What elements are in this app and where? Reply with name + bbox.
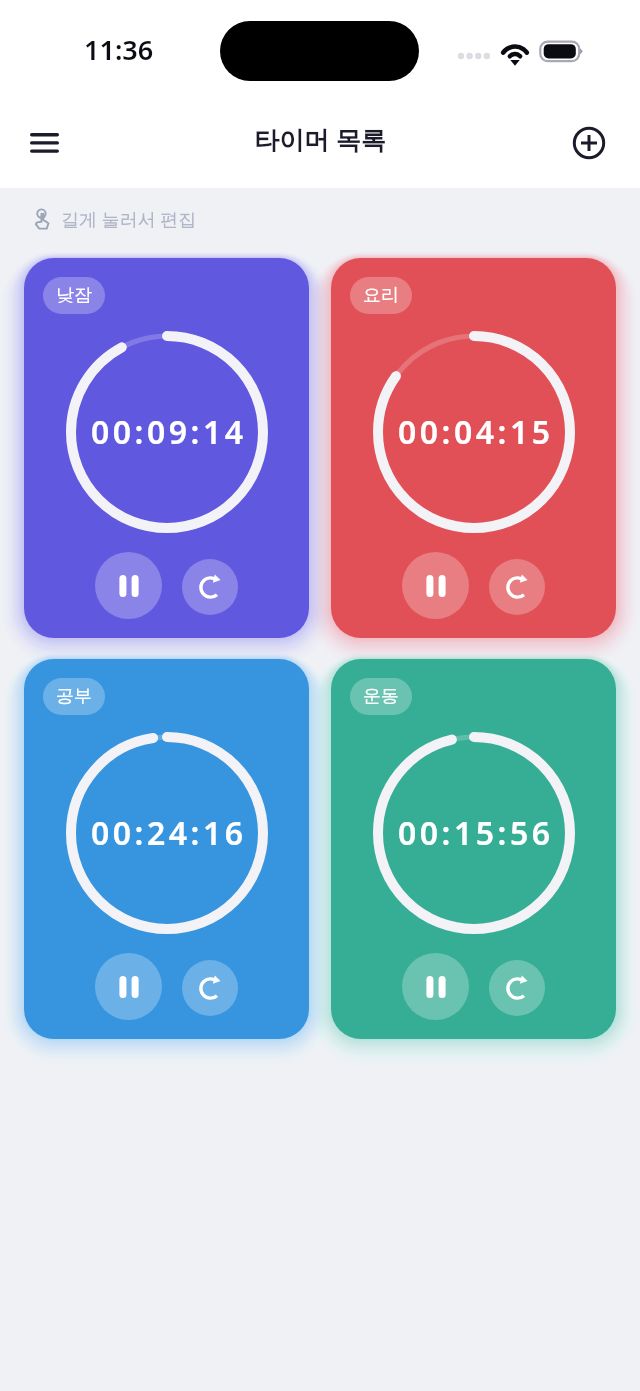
staticText: 운동 [363,685,399,708]
staticText: 00:15:56 [398,811,554,855]
button[interactable]: Menu [18,117,70,169]
staticText: 요리 [363,284,399,307]
staticText: 타이머 목록 [254,122,386,156]
button[interactable]: Pause [402,953,469,1020]
staticText: 공부 [56,685,92,708]
button[interactable]: Reset [182,960,238,1016]
button[interactable]: 낮잠 [24,258,309,638]
staticText: 00:24:16 [91,811,247,855]
staticText: 00:09:14 [91,410,247,454]
button[interactable]: 요리 [331,258,616,638]
button[interactable]: Pause [95,953,162,1020]
button[interactable]: Reset [489,559,545,615]
staticText: 길게 눌러서 편집 [61,207,197,232]
button[interactable]: Pause [402,552,469,619]
staticText: 낮잠 [56,284,92,307]
button[interactable]: Reset [182,559,238,615]
button[interactable]: 공부 [24,659,309,1039]
button[interactable]: Add timer [563,117,615,169]
button[interactable]: 운동 [331,659,616,1039]
button[interactable]: Reset [489,960,545,1016]
button[interactable]: Pause [95,552,162,619]
staticText: 00:04:15 [398,410,554,454]
staticText: 11:36 [84,31,154,68]
